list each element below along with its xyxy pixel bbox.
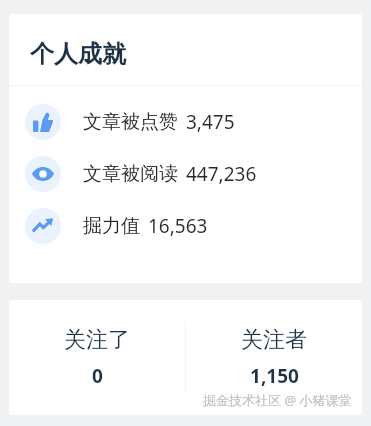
button[interactable]: Likes xyxy=(9,104,362,140)
button[interactable]: Views xyxy=(9,156,362,192)
staticText: 个人成就 xyxy=(30,39,126,69)
staticText: 文章被点赞 xyxy=(83,110,178,134)
other: Views xyxy=(32,163,54,185)
staticText: 关注了 xyxy=(64,326,130,354)
other: Likes xyxy=(33,112,53,132)
button[interactable]: 关注了 xyxy=(9,300,185,415)
staticText: 0 xyxy=(92,363,103,389)
staticText: 3,475 xyxy=(186,109,235,135)
button[interactable]: Power value xyxy=(9,208,362,244)
staticText: 掘力值 xyxy=(83,214,140,238)
staticText: 掘金技术社区 @ 小猪课堂 xyxy=(203,391,352,409)
other: Power value xyxy=(33,216,53,236)
staticText: 关注者 xyxy=(241,326,307,354)
staticText: 文章被阅读 xyxy=(83,162,178,186)
staticText: 16,563 xyxy=(148,213,208,239)
staticText: 447,236 xyxy=(186,161,257,187)
staticText: 1,150 xyxy=(250,363,299,389)
button[interactable]: 关注者 xyxy=(186,300,362,415)
